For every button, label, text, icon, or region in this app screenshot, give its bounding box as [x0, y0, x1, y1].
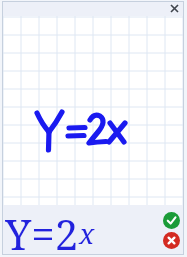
staticText: x: [79, 214, 95, 252]
button[interactable]: Close: [168, 2, 181, 15]
button[interactable]: Handwriting input area: [2, 16, 184, 205]
button[interactable]: Reject: [163, 232, 180, 249]
button[interactable]: Y=2: [5, 205, 158, 255]
staticText: Y=2: [5, 205, 79, 255]
button[interactable]: Accept: [163, 212, 180, 229]
